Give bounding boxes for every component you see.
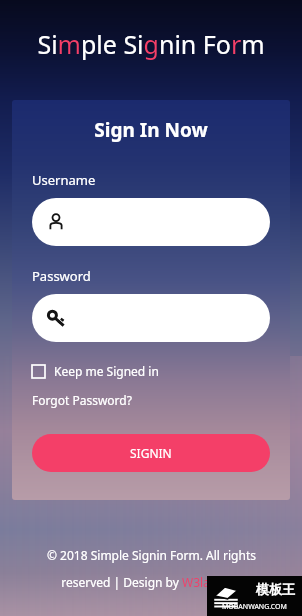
staticText: Forgot Password? [32, 392, 132, 408]
staticText: Keep me Signed in [54, 363, 159, 379]
staticText: © 2018 Simple Signin Form. All rights [47, 547, 256, 563]
staticText: SIGNIN [130, 445, 172, 461]
button[interactable]: Keep me Signed in [32, 363, 159, 379]
staticText: reserved | Design by W3layouts [61, 574, 241, 590]
button[interactable]: Forgot Password? [32, 392, 132, 408]
staticText: Simple Signin Form [37, 27, 265, 61]
button[interactable]: Username [32, 198, 270, 246]
button[interactable]: Password [32, 294, 270, 342]
staticText: Sign In Now [12, 117, 290, 143]
staticText: Password [32, 267, 91, 285]
staticText: MOBANWANG.COM [222, 602, 287, 612]
staticText: Username [32, 171, 96, 189]
staticText: 模板王 [256, 581, 295, 597]
button[interactable]: SIGNIN [32, 434, 270, 472]
